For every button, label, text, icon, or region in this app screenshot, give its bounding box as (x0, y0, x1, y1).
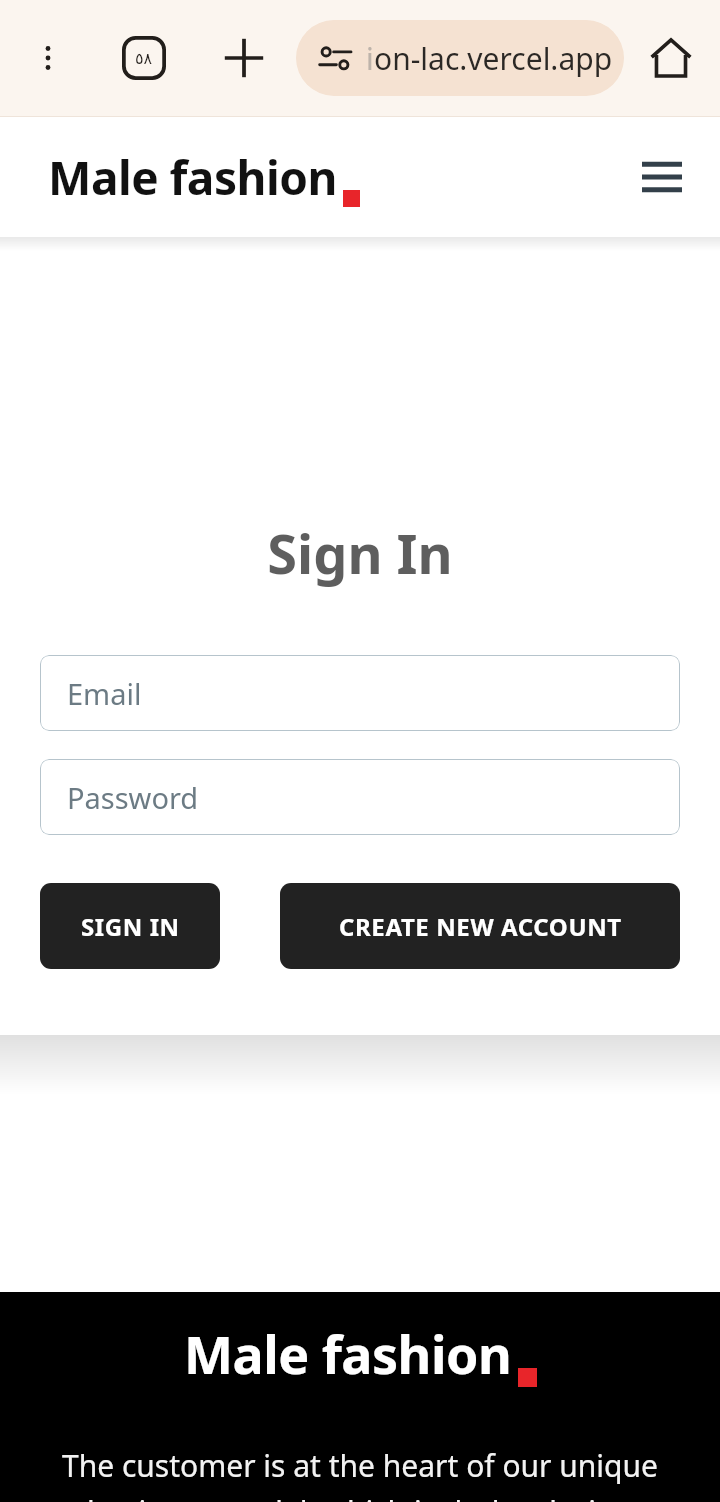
staticText: Male fashion (184, 1318, 512, 1389)
staticText: Email (67, 674, 142, 713)
button[interactable]: Password (40, 759, 680, 835)
button[interactable]: i (296, 20, 624, 96)
button[interactable]: Home (642, 29, 700, 87)
button[interactable]: CREATE NEW ACCOUNT (280, 883, 680, 969)
button[interactable]: Menu (626, 141, 698, 213)
button[interactable]: Tabs (118, 32, 170, 84)
staticText: on-lac.vercel.app (374, 38, 613, 79)
staticText: SIGN IN (81, 910, 180, 943)
staticText: i (366, 38, 374, 79)
button[interactable]: SIGN IN (40, 883, 220, 969)
button[interactable]: More options (26, 36, 70, 80)
staticText: CREATE NEW ACCOUNT (339, 910, 622, 943)
staticText: The customer is at the heart of our uniq… (30, 1445, 690, 1502)
staticText: Password (67, 778, 199, 817)
button[interactable]: Email (40, 655, 680, 731)
staticText: ٥٨ (135, 49, 153, 68)
staticText: Sign In (0, 516, 720, 590)
button[interactable]: New tab (218, 32, 270, 84)
staticText: Male fashion (48, 146, 337, 209)
